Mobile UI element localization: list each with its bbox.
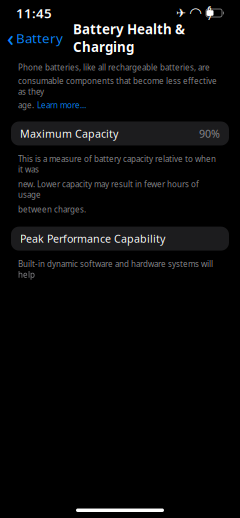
- staticText: ◠: [190, 5, 201, 21]
- staticText: This is a measure of battery capacity re…: [18, 153, 216, 175]
- staticText: Built-in dynamic software and hardware s…: [18, 259, 213, 280]
- staticText: Phone batteries, like all rechargeable b…: [18, 62, 210, 73]
- staticText: Peak Performance Capability: [20, 231, 165, 246]
- staticText: ‹: [7, 24, 14, 52]
- staticText: new. Lower capacity may result in fewer …: [18, 179, 199, 200]
- staticText: 90%: [199, 126, 220, 141]
- staticText: Battery Health & Charging: [73, 20, 185, 56]
- staticText: 11:45: [16, 4, 52, 22]
- staticText: between charges.: [18, 204, 86, 215]
- staticText: age.: [18, 100, 34, 110]
- button[interactable]: Learn more…: [37, 100, 86, 110]
- staticText: Learn more…: [37, 100, 86, 110]
- staticText: ✈: [176, 6, 186, 20]
- button[interactable]: ‹: [7, 20, 69, 56]
- staticText: consumable components that become less e…: [18, 76, 217, 97]
- staticText: 67: [207, 4, 211, 22]
- button[interactable]: Maximum Capacity: [11, 121, 229, 145]
- staticText: Maximum Capacity: [20, 126, 118, 141]
- staticText: Battery: [16, 29, 63, 47]
- button[interactable]: Peak Performance Capability: [11, 227, 229, 251]
